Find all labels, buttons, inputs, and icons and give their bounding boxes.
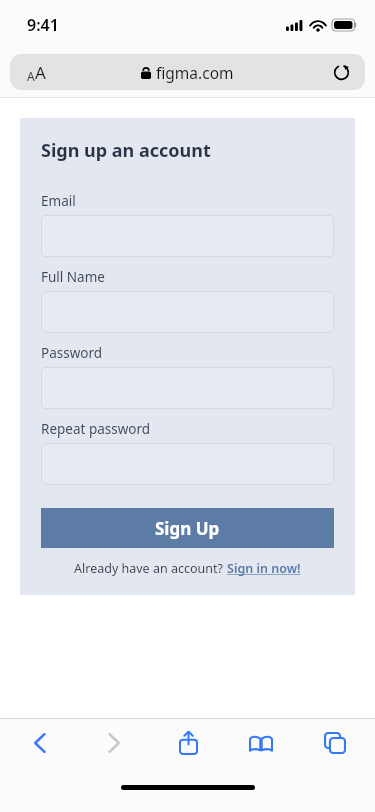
staticText: Sign up an account	[41, 138, 211, 163]
button[interactable]: Reload page	[321, 54, 361, 90]
button[interactable]	[41, 367, 334, 409]
staticText: figma.com	[156, 62, 234, 83]
staticText: 9:41	[27, 14, 59, 36]
button[interactable]: Back	[16, 721, 64, 765]
staticText: Email	[41, 192, 76, 210]
button[interactable]: Share	[164, 721, 212, 765]
staticText: Full Name	[41, 268, 105, 286]
button[interactable]: Tabs	[311, 721, 359, 765]
staticText: Repeat password	[41, 420, 151, 438]
button[interactable]: Sign Up	[41, 508, 334, 548]
button[interactable]: Bookmarks	[237, 721, 285, 765]
staticText: Password	[41, 344, 103, 362]
button[interactable]	[41, 443, 334, 485]
button[interactable]: Forward	[90, 721, 138, 765]
button[interactable]: Sign in now!	[227, 560, 301, 577]
staticText: Sign Up	[155, 517, 220, 540]
staticText: Sign in now!	[227, 560, 301, 577]
button[interactable]	[41, 215, 334, 257]
button[interactable]	[41, 291, 334, 333]
staticText: Already have an account?	[74, 560, 227, 577]
staticText: A	[27, 68, 35, 84]
button[interactable]: Text size options	[14, 54, 58, 90]
staticText: A	[35, 61, 46, 84]
